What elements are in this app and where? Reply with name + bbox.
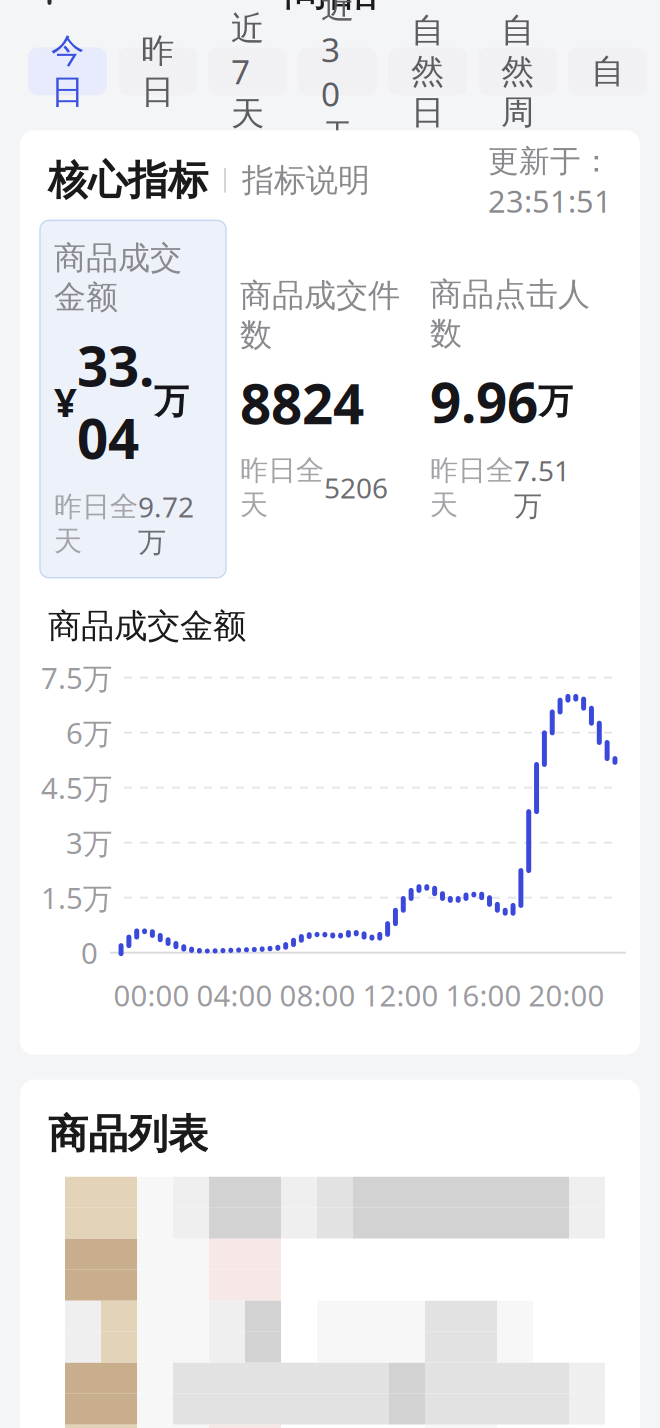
- staticText: 今日: [51, 30, 84, 112]
- staticText: 16:00: [445, 976, 521, 1015]
- button[interactable]: 自然周: [478, 47, 557, 95]
- button[interactable]: 自然日: [388, 47, 467, 95]
- staticText: 指标说明: [242, 161, 370, 200]
- staticText: 万: [538, 380, 573, 423]
- button[interactable]: 商品成交件数: [226, 258, 416, 540]
- staticText: 33.04: [77, 329, 154, 474]
- staticText: 商品成交件数: [240, 276, 400, 355]
- staticText: 近7天: [231, 8, 264, 134]
- staticText: 9.96: [430, 365, 538, 438]
- staticText: 近30天: [321, 0, 354, 157]
- staticText: 7.51万: [514, 452, 570, 523]
- staticText: 昨日全天: [54, 490, 138, 558]
- button[interactable]: 近30天: [298, 47, 377, 95]
- staticText: 0: [81, 933, 98, 972]
- staticText: 9.72万: [138, 488, 194, 560]
- staticText: 12:00: [362, 976, 438, 1015]
- staticText: 1.5万: [41, 878, 112, 917]
- staticText: 08:00: [279, 976, 355, 1015]
- button[interactable]: 商品成交金额: [40, 220, 226, 578]
- staticText: 04:00: [196, 976, 272, 1015]
- staticText: 核心指标: [48, 156, 208, 205]
- staticText: 商品成交金额: [54, 238, 182, 317]
- staticText: ¥: [54, 375, 77, 428]
- staticText: 昨日全天: [240, 453, 324, 522]
- staticText: 昨日全天: [430, 453, 514, 522]
- button[interactable]: Back: [14, 0, 76, 18]
- staticText: 3万: [66, 823, 112, 862]
- staticText: 自然日: [411, 10, 444, 133]
- staticText: 自然周: [501, 10, 534, 133]
- staticText: 万: [154, 380, 189, 423]
- staticText: 6万: [66, 713, 112, 752]
- staticText: 8824: [240, 367, 364, 439]
- staticText: 4.5万: [41, 768, 112, 807]
- staticText: 商品列表: [48, 1110, 208, 1159]
- button[interactable]: 昨日: [118, 47, 197, 95]
- staticText: 商品成交金额: [48, 606, 246, 647]
- staticText: 自: [591, 51, 624, 92]
- staticText: 20:00: [528, 976, 604, 1015]
- staticText: 7.5万: [41, 658, 112, 697]
- staticText: 00:00: [113, 976, 189, 1015]
- button[interactable]: 今日: [28, 47, 107, 95]
- staticText: 昨日: [141, 30, 174, 112]
- staticText: 更新于： 23:51:51: [488, 140, 612, 221]
- button[interactable]: 近7天: [208, 47, 287, 95]
- button[interactable]: 商品点击人数: [416, 257, 606, 541]
- staticText: 商品: [282, 0, 378, 18]
- staticText: 商品点击人数: [430, 275, 590, 353]
- button[interactable]: 自: [568, 47, 647, 95]
- staticText: 5206: [324, 469, 388, 506]
- button[interactable]: 指标说明: [242, 161, 370, 200]
